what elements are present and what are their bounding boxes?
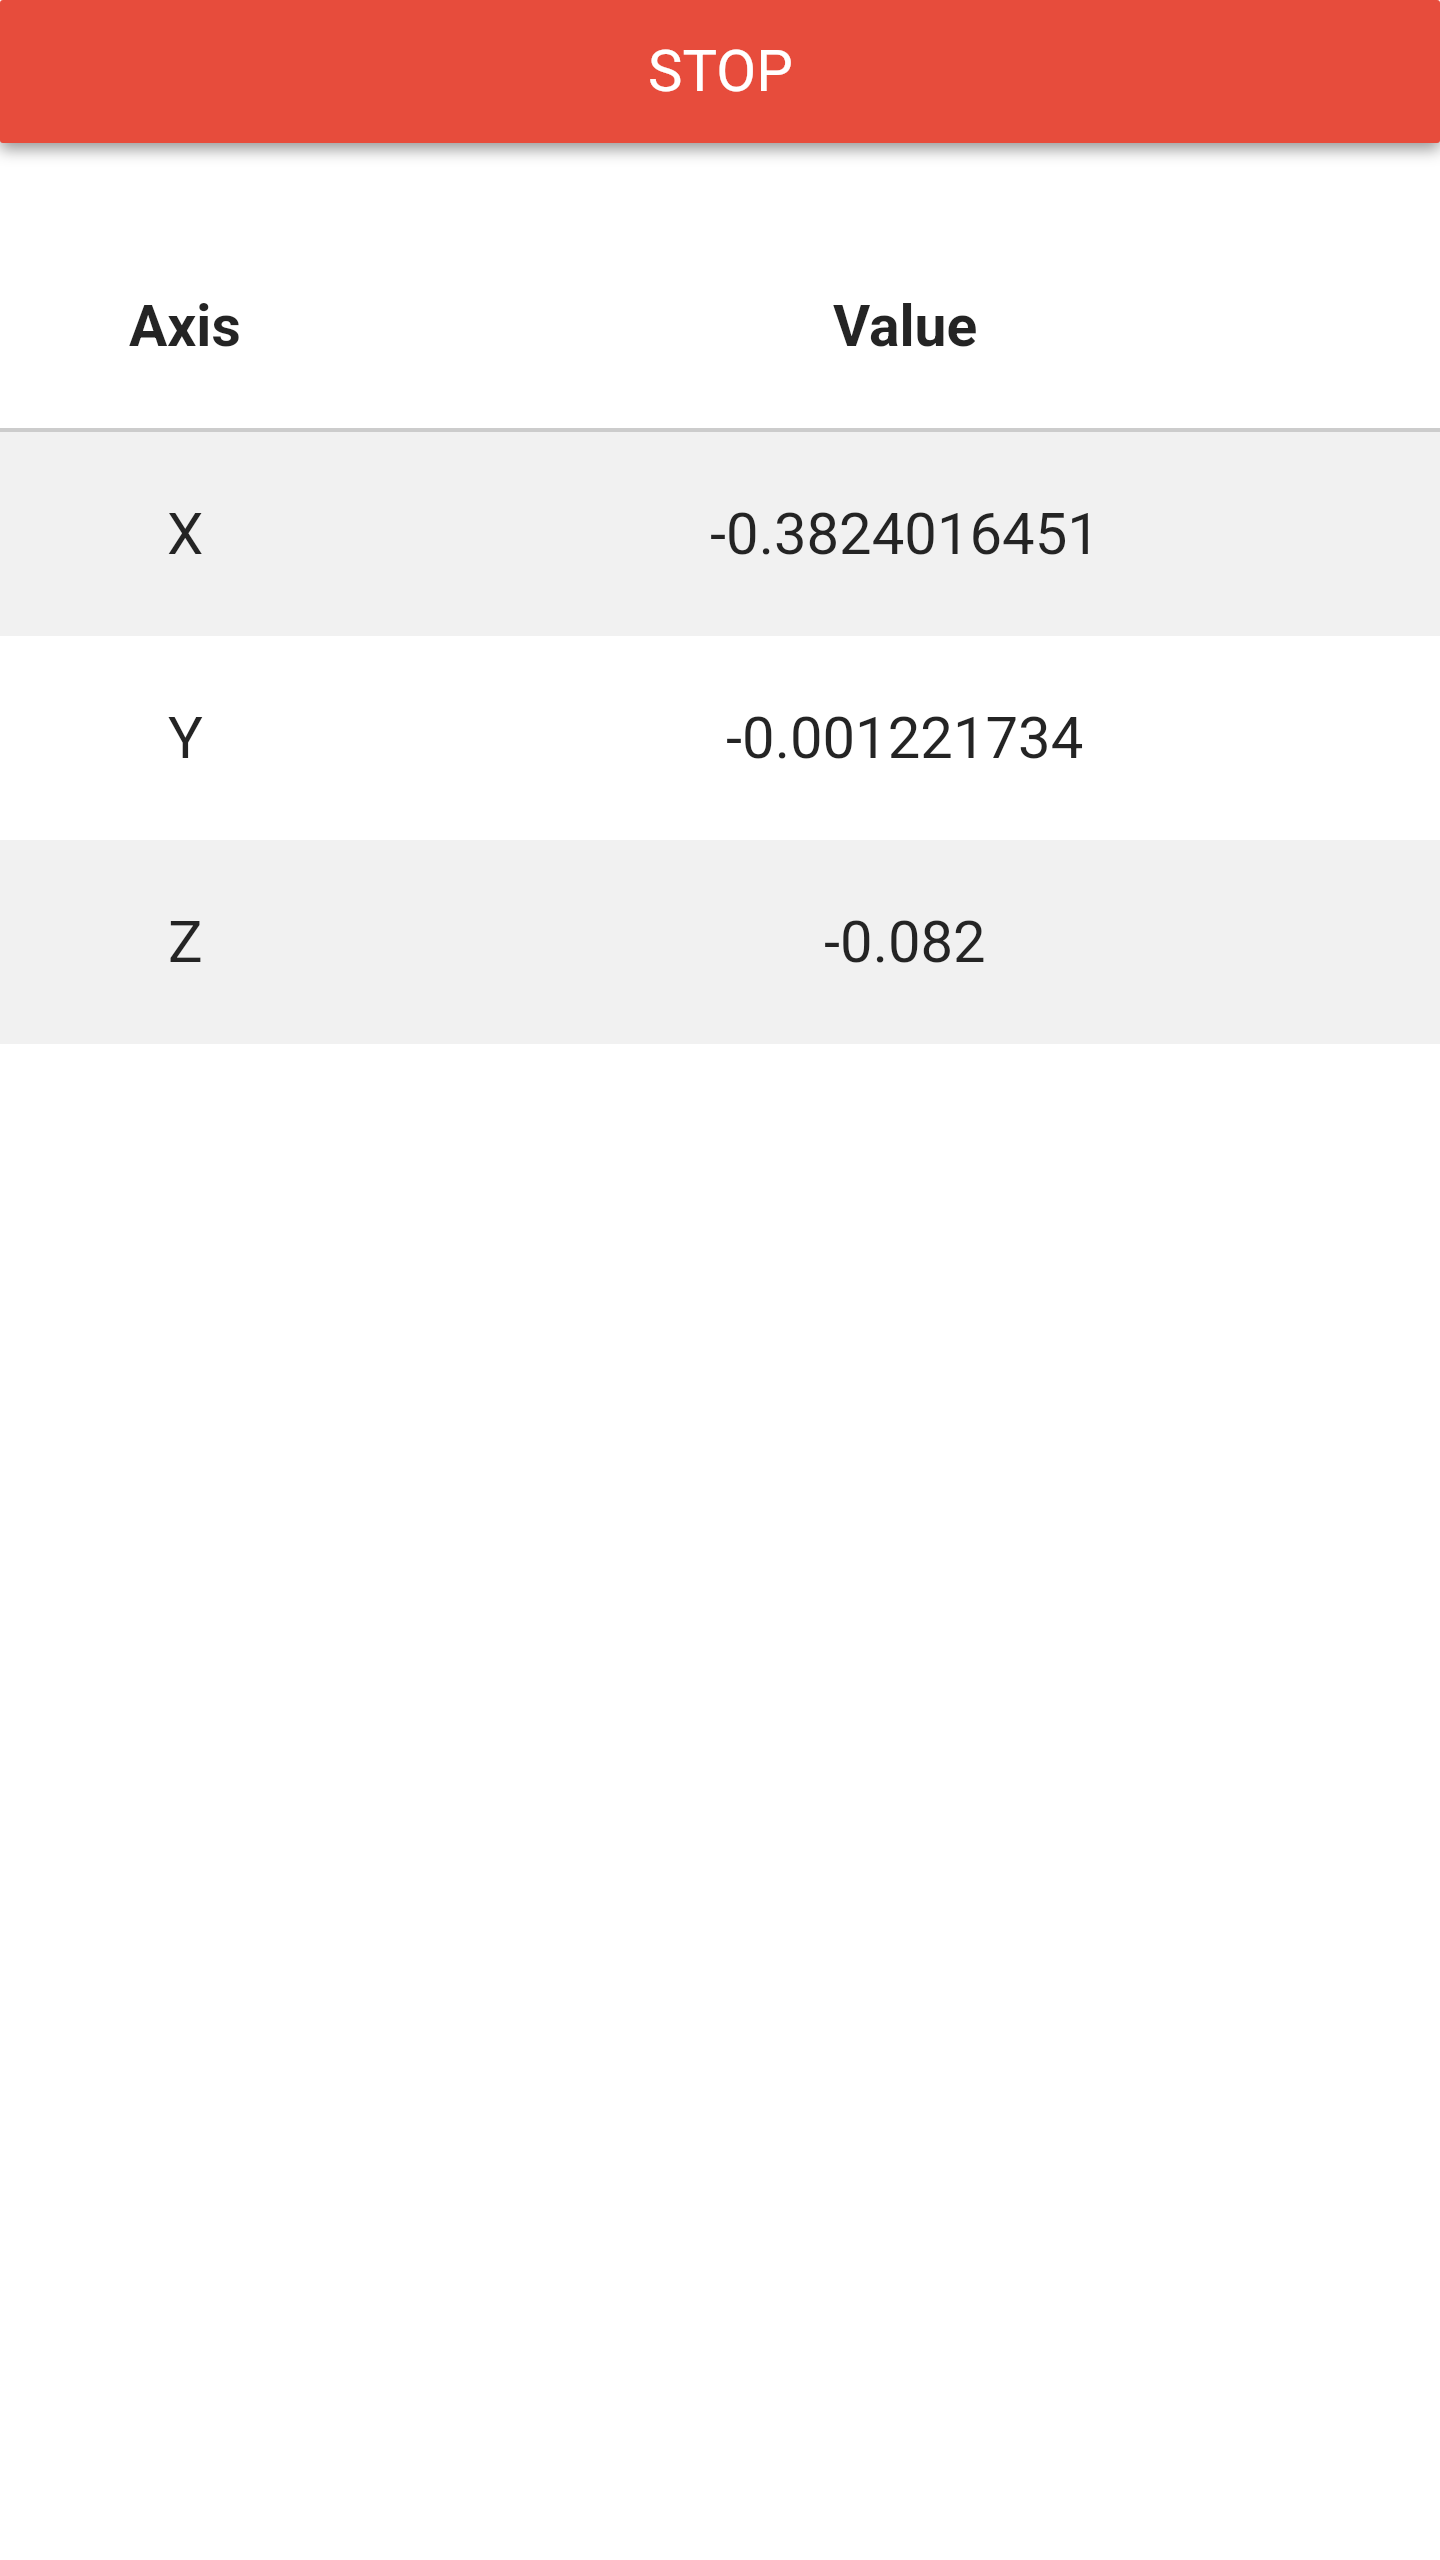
button[interactable]: Y <box>0 636 1440 840</box>
staticText: Axis <box>129 293 241 360</box>
staticText: -0.082 <box>824 908 986 976</box>
button[interactable]: STOP <box>0 0 1440 143</box>
staticText: Z <box>168 908 203 976</box>
button[interactable]: Z <box>0 840 1440 1044</box>
staticText: Value <box>833 293 978 360</box>
button[interactable]: X <box>0 432 1440 636</box>
staticText: -0.3824016451 <box>710 500 1100 568</box>
staticText: -0.001221734 <box>726 704 1084 772</box>
staticText: X <box>167 500 204 568</box>
staticText: Y <box>168 704 203 772</box>
staticText: STOP <box>648 37 793 105</box>
